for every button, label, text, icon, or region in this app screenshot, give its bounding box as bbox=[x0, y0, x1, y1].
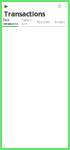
button[interactable]: Account bbox=[56, 2, 63, 9]
staticText: Analysis bbox=[55, 20, 65, 24]
button[interactable]: Approvals bbox=[35, 18, 51, 27]
button[interactable]: Analysis bbox=[51, 18, 68, 27]
staticText: Payment runs bbox=[21, 19, 32, 26]
staticText: Transactions bbox=[4, 10, 45, 18]
button[interactable]: More bbox=[63, 2, 68, 9]
button[interactable]: Menu bbox=[2, 2, 10, 9]
button[interactable]: Payment runs bbox=[18, 18, 35, 27]
staticText: ▸ bbox=[4, 2, 7, 10]
staticText: Approvals bbox=[37, 20, 50, 24]
staticText: Bank transactions bbox=[3, 19, 18, 26]
button[interactable]: Bank transactions bbox=[2, 18, 18, 27]
staticText: ⋮ bbox=[63, 3, 68, 9]
